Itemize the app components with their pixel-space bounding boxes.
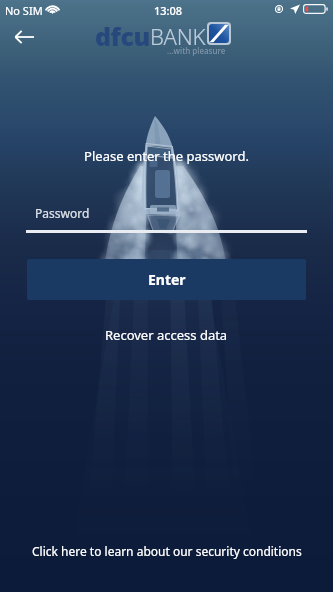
button[interactable]: Back <box>5 18 42 55</box>
staticText: dfcu <box>95 19 150 53</box>
staticText: Please enter the password. <box>84 147 249 165</box>
button[interactable]: Recover access data <box>93 320 240 350</box>
button[interactable]: Click here to learn about our security c… <box>0 537 333 565</box>
staticText: Password <box>35 205 90 221</box>
staticText: BANK <box>150 21 206 51</box>
staticText: Recover access data <box>105 326 228 344</box>
staticText: Click here to learn about our security c… <box>32 543 302 559</box>
staticText: Enter <box>148 270 186 289</box>
staticText: 13:08 <box>154 3 183 18</box>
button[interactable]: Enter <box>27 259 306 300</box>
staticText: No SIM <box>5 3 43 18</box>
staticText: ...with pleasure <box>167 45 226 56</box>
